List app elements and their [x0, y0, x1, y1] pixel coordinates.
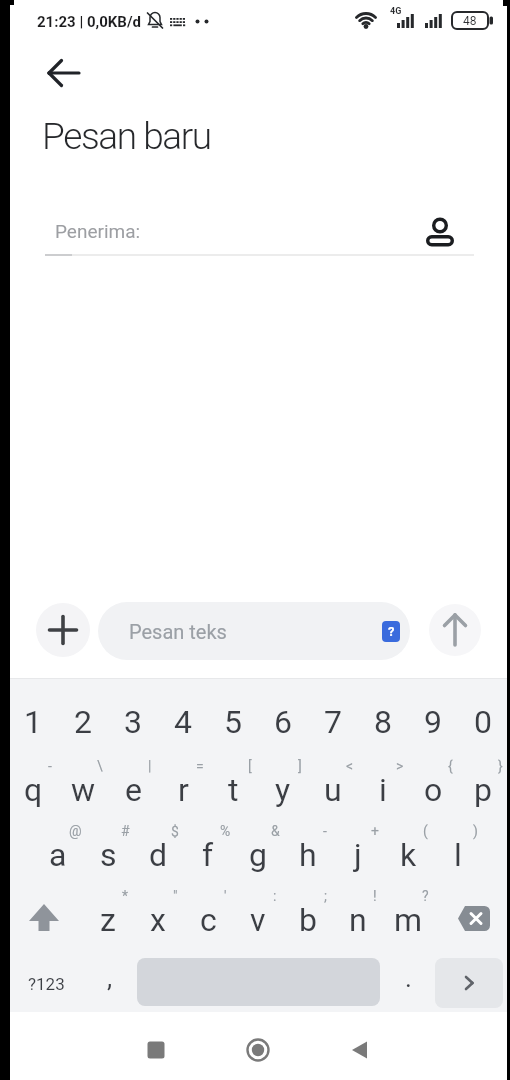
button[interactable]: Pesan teks: [98, 602, 410, 660]
button[interactable]: l: [433, 824, 483, 886]
button[interactable]: x: [133, 889, 183, 951]
staticText: g: [249, 836, 267, 874]
staticText: Pesan baru: [42, 115, 211, 158]
staticText: Penerima:: [55, 220, 141, 242]
button[interactable]: [418, 209, 462, 253]
button[interactable]: [136, 1030, 176, 1070]
button[interactable]: k: [383, 824, 433, 886]
staticText: s: [100, 836, 117, 874]
button[interactable]: s: [83, 824, 133, 886]
button[interactable]: w: [58, 759, 108, 821]
staticText: 5: [224, 703, 242, 741]
staticText: .: [405, 963, 412, 993]
button[interactable]: ,: [90, 953, 130, 1003]
staticText: @: [69, 823, 82, 839]
staticText: [: [248, 758, 252, 774]
staticText: -: [48, 758, 52, 774]
button[interactable]: [36, 603, 90, 657]
staticText: ': [224, 888, 227, 904]
button[interactable]: f: [183, 824, 233, 886]
button[interactable]: v: [233, 889, 283, 951]
button[interactable]: h: [283, 824, 333, 886]
button[interactable]: [447, 894, 499, 946]
staticText: i: [379, 771, 387, 809]
button[interactable]: e: [108, 759, 158, 821]
staticText: ]: [298, 758, 302, 774]
button[interactable]: b: [283, 889, 333, 951]
staticText: \: [97, 758, 103, 774]
staticText: =: [196, 758, 204, 774]
button[interactable]: 2: [58, 691, 108, 753]
staticText: p: [474, 771, 492, 809]
staticText: {: [448, 758, 453, 774]
staticText: a: [49, 836, 67, 874]
button[interactable]: .: [388, 953, 428, 1003]
button[interactable]: 3: [108, 691, 158, 753]
button[interactable]: 6: [258, 691, 308, 753]
staticText: m: [394, 901, 423, 939]
staticText: &: [271, 823, 280, 839]
staticText: 8: [374, 703, 392, 741]
button[interactable]: y: [258, 759, 308, 821]
staticText: b: [299, 901, 317, 939]
staticText: 6: [274, 703, 292, 741]
button[interactable]: t: [208, 759, 258, 821]
staticText: 7: [324, 703, 342, 741]
staticText: :: [273, 888, 277, 904]
button[interactable]: 4: [158, 691, 208, 753]
button[interactable]: g: [233, 824, 283, 886]
staticText: e: [125, 771, 142, 809]
button[interactable]: [18, 894, 70, 946]
staticText: w: [71, 771, 96, 809]
staticText: 9: [424, 703, 442, 741]
staticText: 1: [24, 703, 42, 741]
staticText: !: [373, 888, 377, 904]
staticText: #: [121, 823, 130, 839]
button[interactable]: 1: [8, 691, 58, 753]
staticText: -: [323, 823, 327, 839]
staticText: z: [100, 901, 116, 939]
button[interactable]: p: [458, 759, 508, 821]
button[interactable]: 7: [308, 691, 358, 753]
staticText: ": [173, 888, 178, 904]
staticText: c: [200, 901, 217, 939]
button[interactable]: [238, 1030, 278, 1070]
staticText: n: [349, 901, 367, 939]
button[interactable]: 9: [408, 691, 458, 753]
staticText: 0: [474, 703, 492, 741]
button[interactable]: 8: [358, 691, 408, 753]
button[interactable]: z: [83, 889, 133, 951]
staticText: +: [371, 823, 379, 839]
staticText: Pesan teks: [129, 620, 227, 643]
button[interactable]: u: [308, 759, 358, 821]
button[interactable]: ?123: [18, 959, 74, 1009]
staticText: 4: [174, 703, 192, 741]
button[interactable]: q: [8, 759, 58, 821]
staticText: j: [354, 836, 362, 874]
button[interactable]: 5: [208, 691, 258, 753]
button[interactable]: i: [358, 759, 408, 821]
staticText: q: [24, 771, 43, 809]
button[interactable]: m: [383, 889, 433, 951]
button[interactable]: o: [408, 759, 458, 821]
staticText: 3: [124, 703, 142, 741]
button[interactable]: [429, 604, 481, 656]
button[interactable]: 0: [458, 691, 508, 753]
button[interactable]: d: [133, 824, 183, 886]
button[interactable]: r: [158, 759, 208, 821]
staticText: |: [148, 758, 152, 774]
staticText: t: [228, 771, 239, 809]
staticText: h: [299, 836, 317, 874]
button[interactable]: [339, 1030, 379, 1070]
staticText: %: [220, 823, 231, 839]
staticText: y: [275, 771, 291, 809]
button[interactable]: j: [333, 824, 383, 886]
button[interactable]: n: [333, 889, 383, 951]
staticText: 21:23 | 0,0KB/d: [37, 13, 141, 31]
button[interactable]: [435, 958, 503, 1008]
button[interactable]: [41, 51, 85, 95]
button[interactable]: c: [183, 889, 233, 951]
staticText: ?: [388, 624, 395, 639]
button[interactable]: a: [33, 824, 83, 886]
